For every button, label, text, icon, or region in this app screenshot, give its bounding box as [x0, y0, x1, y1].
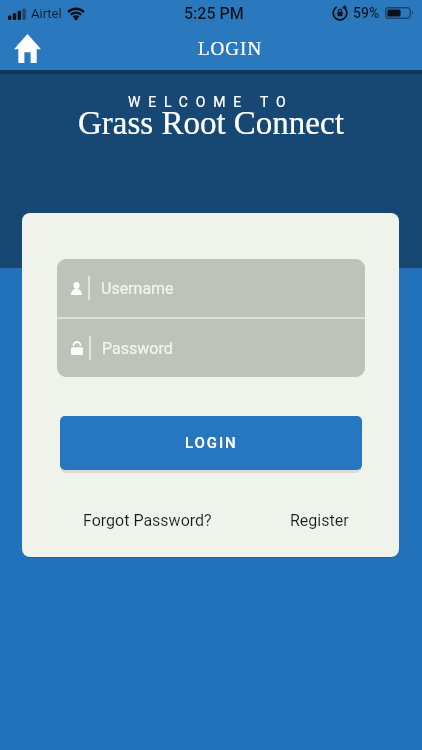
staticText: Grass Root Connect: [78, 105, 344, 142]
button[interactable]: Password: [57, 319, 365, 377]
button[interactable]: Username: [57, 259, 365, 317]
button[interactable]: Forgot Password?: [75, 503, 220, 537]
staticText: 5:25 PM: [184, 4, 244, 23]
button[interactable]: Register: [280, 503, 358, 537]
staticText: 59%: [353, 5, 380, 21]
staticText: Register: [290, 511, 349, 530]
staticText: LOGIN: [198, 38, 263, 59]
staticText: LOGIN: [185, 434, 238, 452]
staticText: WELCOME TO: [128, 94, 294, 110]
staticText: Password: [102, 339, 173, 358]
staticText: Airtel: [31, 6, 62, 21]
staticText: Forgot Password?: [83, 511, 212, 530]
button[interactable]: LOGIN: [60, 416, 362, 470]
staticText: Username: [101, 279, 174, 298]
button[interactable]: [9, 29, 45, 67]
